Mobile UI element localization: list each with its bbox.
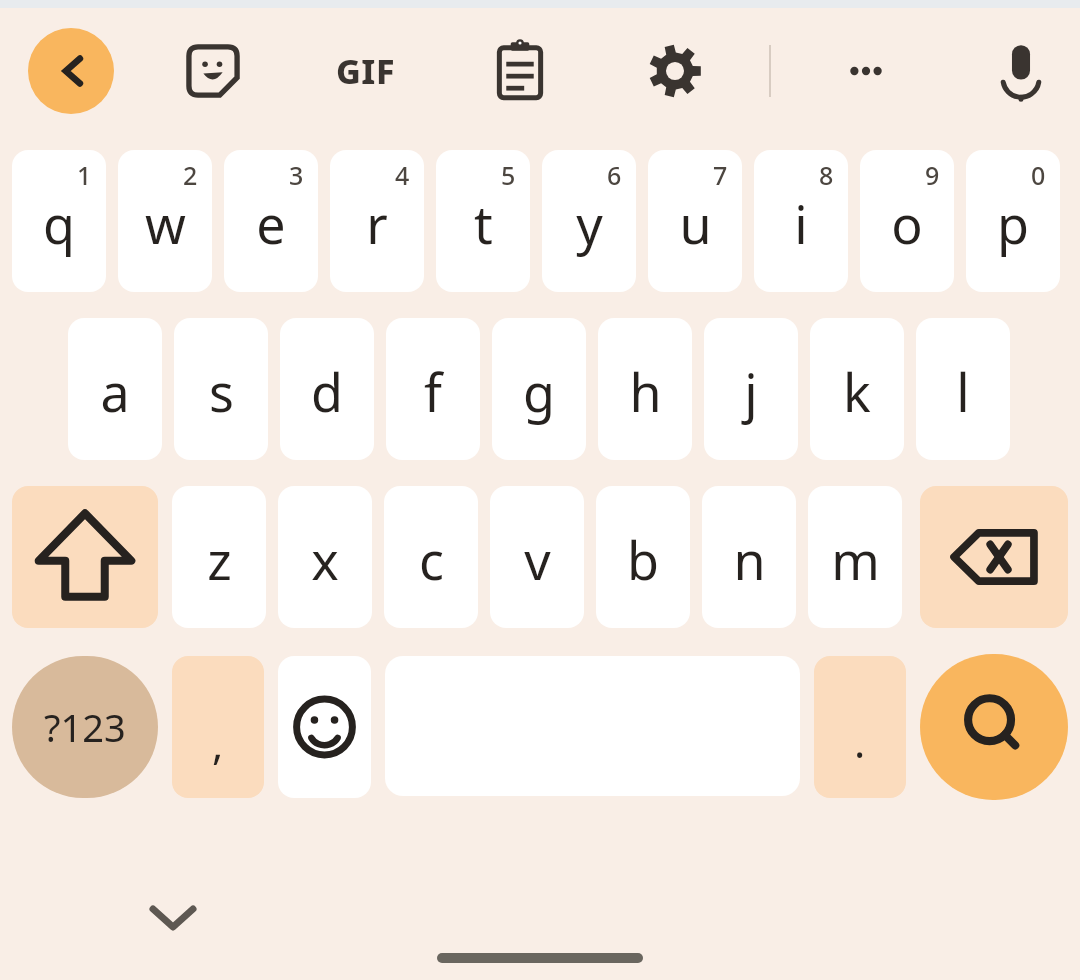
button[interactable]: z [172, 486, 266, 628]
button[interactable]: a [68, 318, 162, 460]
button[interactable]: s [174, 318, 268, 460]
staticText: ?123 [44, 701, 126, 753]
button[interactable]: GIF [322, 28, 408, 114]
staticText: r [366, 188, 388, 259]
staticText: k [843, 356, 871, 427]
button[interactable]: g [492, 318, 586, 460]
staticText: 1 [77, 158, 92, 192]
button[interactable]: ?123 [12, 656, 158, 798]
button[interactable]: o [860, 150, 954, 292]
button[interactable]: Hide keyboard [133, 877, 213, 957]
staticText: 8 [819, 158, 834, 192]
staticText: e [256, 188, 286, 259]
button[interactable]: Voice input [978, 28, 1064, 114]
staticText: q [43, 188, 75, 259]
button[interactable]: v [490, 486, 584, 628]
staticText: m [831, 524, 880, 595]
button[interactable]: i [754, 150, 848, 292]
staticText: w [145, 188, 186, 259]
staticText: f [424, 356, 442, 427]
button[interactable]: w [118, 150, 212, 292]
button[interactable]: p [966, 150, 1060, 292]
staticText: 0 [1031, 158, 1046, 192]
staticText: t [474, 188, 493, 259]
button[interactable]: Emoji [278, 656, 371, 798]
staticText: s [209, 356, 234, 427]
button[interactable]: u [648, 150, 742, 292]
staticText: 2 [183, 158, 198, 192]
button[interactable]: . [814, 656, 906, 798]
button[interactable]: q [12, 150, 106, 292]
staticText: 6 [607, 158, 622, 192]
staticText: v [524, 524, 551, 595]
button[interactable]: Search [920, 654, 1068, 800]
button[interactable]: Backspace [920, 486, 1068, 628]
staticText: u [679, 188, 712, 259]
staticText: 3 [289, 158, 304, 192]
button[interactable]: l [916, 318, 1010, 460]
staticText: , [212, 715, 224, 772]
staticText: p [997, 188, 1029, 259]
staticText: 4 [395, 158, 410, 192]
button[interactable]: b [596, 486, 690, 628]
button[interactable]: h [598, 318, 692, 460]
staticText: 5 [501, 158, 516, 192]
staticText: y [576, 188, 603, 259]
button[interactable]: Shift [12, 486, 158, 628]
button[interactable]: n [702, 486, 796, 628]
staticText: . [854, 713, 866, 770]
staticText: b [627, 524, 659, 595]
staticText: z [207, 524, 232, 595]
button[interactable]: y [542, 150, 636, 292]
staticText: l [956, 356, 970, 427]
button[interactable]: f [386, 318, 480, 460]
button[interactable]: r [330, 150, 424, 292]
staticText: GIF [336, 48, 395, 94]
button[interactable]: c [384, 486, 478, 628]
staticText: n [733, 524, 766, 595]
staticText: c [419, 524, 444, 595]
button[interactable]: Settings [632, 28, 718, 114]
button[interactable]: j [704, 318, 798, 460]
button[interactable]: Back [28, 28, 114, 114]
staticText: 9 [925, 158, 940, 192]
button[interactable]: t [436, 150, 530, 292]
staticText: a [100, 356, 130, 427]
button[interactable]: e [224, 150, 318, 292]
staticText: 7 [713, 158, 728, 192]
staticText: o [891, 188, 923, 259]
button[interactable]: x [278, 486, 372, 628]
button[interactable]: Clipboard [477, 28, 563, 114]
button[interactable]: Stickers [170, 28, 256, 114]
button[interactable]: , [172, 656, 264, 798]
staticText: x [311, 524, 339, 595]
button[interactable]: d [280, 318, 374, 460]
staticText: h [629, 356, 662, 427]
button[interactable]: More options [823, 28, 909, 114]
staticText: i [794, 188, 808, 259]
staticText: j [744, 356, 758, 427]
staticText: d [311, 356, 343, 427]
staticText: g [523, 356, 555, 427]
button[interactable]: m [808, 486, 902, 628]
button[interactable]: k [810, 318, 904, 460]
